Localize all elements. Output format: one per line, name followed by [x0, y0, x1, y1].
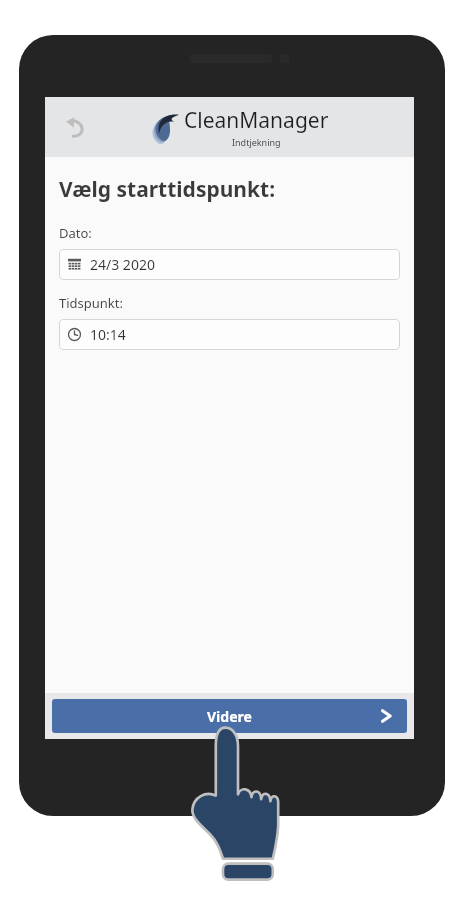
button[interactable]: Videre — [52, 699, 407, 733]
staticText: Dato: — [59, 224, 92, 242]
staticText: Indtjekning — [232, 136, 281, 148]
button[interactable]: 24/3 2020 — [59, 249, 400, 280]
staticText: CleanManager — [184, 106, 329, 135]
staticText: Tidspunkt: — [59, 294, 123, 312]
staticText: 10:14 — [90, 325, 126, 344]
button[interactable]: 10:14 — [59, 319, 400, 350]
staticText: 24/3 2020 — [90, 255, 155, 274]
staticText: Videre — [207, 707, 252, 726]
staticText: Vælg starttidspunkt: — [59, 175, 276, 204]
button[interactable]: Tilbage — [53, 105, 97, 149]
